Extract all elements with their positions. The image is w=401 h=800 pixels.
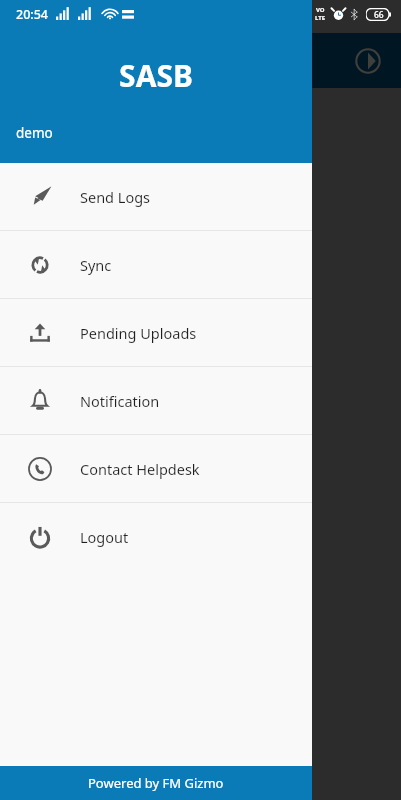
staticText: Contact Helpdesk xyxy=(80,459,200,479)
staticText: Pending Uploads xyxy=(80,323,197,343)
staticText: Powered by FM Gizmo xyxy=(88,774,224,792)
staticText: 20:54 xyxy=(16,6,49,23)
staticText: Send Logs xyxy=(80,187,151,207)
staticText: 66 xyxy=(374,9,384,21)
staticText: Notification xyxy=(80,391,160,411)
button[interactable]: Send Logs xyxy=(0,163,312,230)
button[interactable]: Notification xyxy=(0,367,312,434)
staticText: Logout xyxy=(80,527,129,547)
staticText: LTE xyxy=(315,14,326,22)
button[interactable]: Pending Uploads xyxy=(0,299,312,366)
button[interactable]: Logout xyxy=(0,503,312,570)
button[interactable]: Contact Helpdesk xyxy=(0,435,312,502)
staticText: demo xyxy=(16,124,53,142)
staticText: SASB xyxy=(0,55,312,96)
staticText: Sync xyxy=(80,255,112,275)
button[interactable]: Powered by FM Gizmo xyxy=(0,766,312,800)
button[interactable]: Night mode xyxy=(355,48,381,74)
staticText: VO xyxy=(316,6,325,14)
button[interactable]: Sync xyxy=(0,231,312,298)
